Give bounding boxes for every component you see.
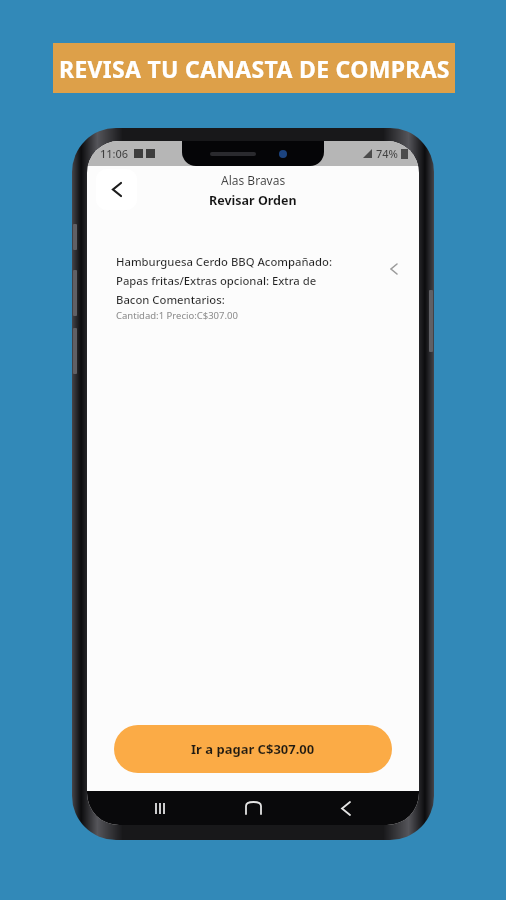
staticText: 74%: [376, 146, 398, 161]
staticText: Cantidad:1 Precio:C$307.00: [116, 309, 238, 322]
staticText: Ir a pagar C$307.00: [191, 740, 315, 758]
button[interactable]: Home: [233, 791, 273, 825]
staticText: REVISA TU CANASTA DE COMPRAS: [59, 53, 450, 84]
staticText: Hamburguesa Cerdo BBQ Acompañado: Papas …: [116, 254, 332, 307]
button[interactable]: Back: [326, 791, 366, 825]
button[interactable]: REVISA TU CANASTA DE COMPRAS: [53, 43, 455, 93]
staticText: Alas Bravas: [221, 172, 286, 188]
staticText: 11:06: [100, 146, 129, 161]
button[interactable]: Recent apps: [140, 791, 180, 825]
button[interactable]: Ir a pagar C$307.00: [114, 725, 392, 773]
button[interactable]: Item details: [383, 258, 405, 280]
staticText: Revisar Orden: [209, 192, 297, 209]
button[interactable]: Hamburguesa Cerdo BBQ Acompañado: Papas …: [87, 254, 419, 322]
button[interactable]: Back: [96, 169, 137, 210]
